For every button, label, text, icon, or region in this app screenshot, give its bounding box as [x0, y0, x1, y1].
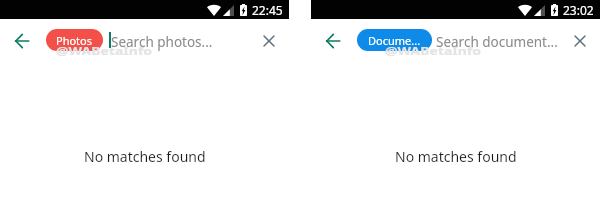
- staticText: @WABetaInfo: [385, 44, 482, 58]
- staticText: Search photos...: [111, 33, 213, 51]
- staticText: 22:45: [252, 2, 283, 18]
- staticText: Search document...: [436, 33, 558, 51]
- staticText: No matches found: [395, 147, 517, 166]
- button[interactable]: Back: [9, 28, 35, 54]
- button[interactable]: Clear search: [256, 28, 282, 54]
- button[interactable]: Docume...: [357, 29, 432, 51]
- staticText: Photos: [56, 33, 93, 48]
- button[interactable]: Photos: [46, 29, 103, 51]
- staticText: @WABetaInfo: [56, 44, 153, 58]
- staticText: No matches found: [84, 147, 206, 166]
- staticText: Docume...: [368, 33, 421, 48]
- button[interactable]: Back: [320, 28, 346, 54]
- staticText: 23:02: [563, 2, 594, 18]
- button[interactable]: Clear search: [567, 28, 593, 54]
